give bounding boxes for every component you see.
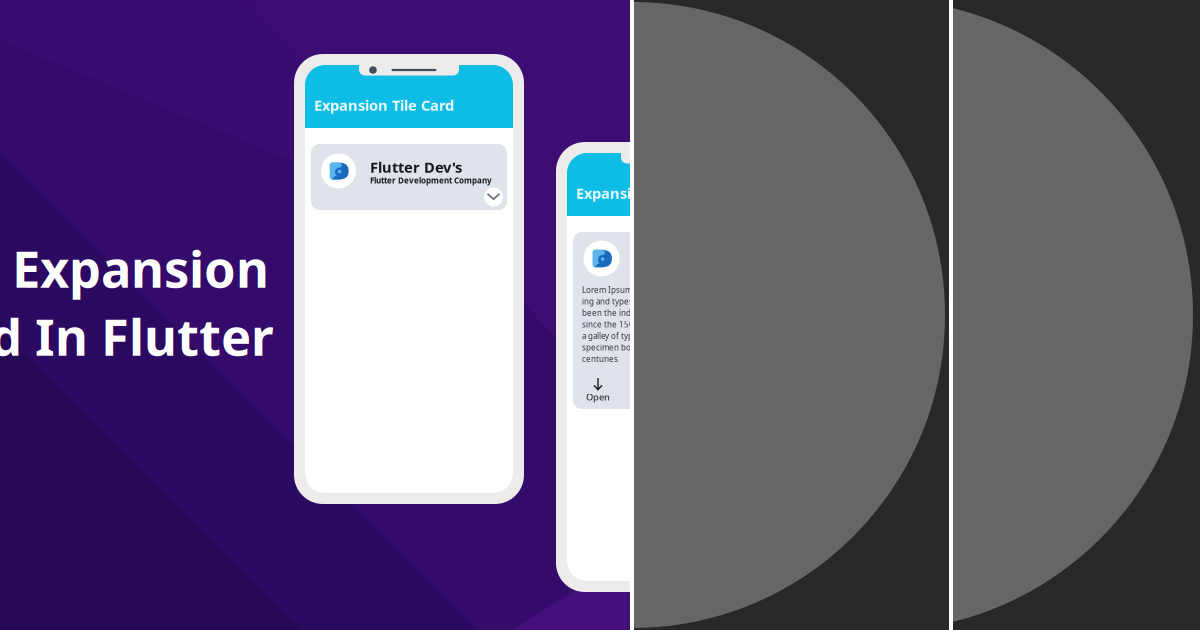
staticText: Flutter Development Company [370, 175, 492, 186]
staticText: centuries [582, 354, 618, 364]
staticText: Lorem Ipsum is simply dummy text of [582, 285, 722, 295]
button[interactable]: Flutter Dev's [311, 144, 507, 210]
staticText: a galley of type and scrambled it to [582, 331, 712, 341]
staticText: Tile Card In Flutter [0, 302, 274, 370]
staticText: since the 1500s, when an unknown pr [582, 319, 726, 330]
staticText: Open [586, 391, 610, 403]
staticText: specimen book. It has survived not on [582, 342, 726, 353]
staticText: Expansion Tile Card [314, 95, 454, 115]
staticText: Flutter Dev's [370, 157, 462, 177]
button[interactable]: Lorem Ipsum is simply dummy text of [573, 232, 769, 409]
staticText: been the industry's standard dummy [582, 308, 721, 318]
staticText: Create Expansion [0, 234, 269, 302]
staticText: Expansion Tile Card [576, 183, 716, 203]
staticText: ing and typesetting industry. Lorem [582, 296, 717, 307]
